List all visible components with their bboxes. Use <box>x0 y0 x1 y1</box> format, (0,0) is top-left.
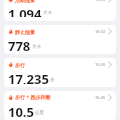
staticText: 大卡 <box>43 10 52 16</box>
button[interactable]: 靜止能量 778 大卡 <box>4 25 116 54</box>
staticText: 步行 + 跑步距離 <box>15 94 51 101</box>
staticText: 步 <box>50 77 55 83</box>
staticText: 靜止能量 <box>15 29 35 35</box>
staticText: 活動能量 <box>15 0 35 3</box>
staticText: 16:26 <box>95 95 106 100</box>
staticText: 17,235 <box>8 70 49 84</box>
staticText: 步行 <box>15 62 25 68</box>
staticText: 10.5 <box>8 103 34 117</box>
staticText: 16:32 <box>95 29 106 34</box>
staticText: 公里 <box>35 110 44 116</box>
staticText: 1,094 <box>8 5 42 17</box>
button[interactable]: 活動能量 1,094 大卡 <box>4 0 116 21</box>
button[interactable]: 步行 + 跑步距離 10.5 公里 <box>4 91 116 120</box>
staticText: 大卡 <box>32 44 41 50</box>
staticText: 16:26 <box>95 62 106 67</box>
button[interactable]: 步行 17,235 步 <box>4 58 116 87</box>
staticText: 778 <box>8 37 31 51</box>
staticText: 16:33 <box>95 0 106 2</box>
